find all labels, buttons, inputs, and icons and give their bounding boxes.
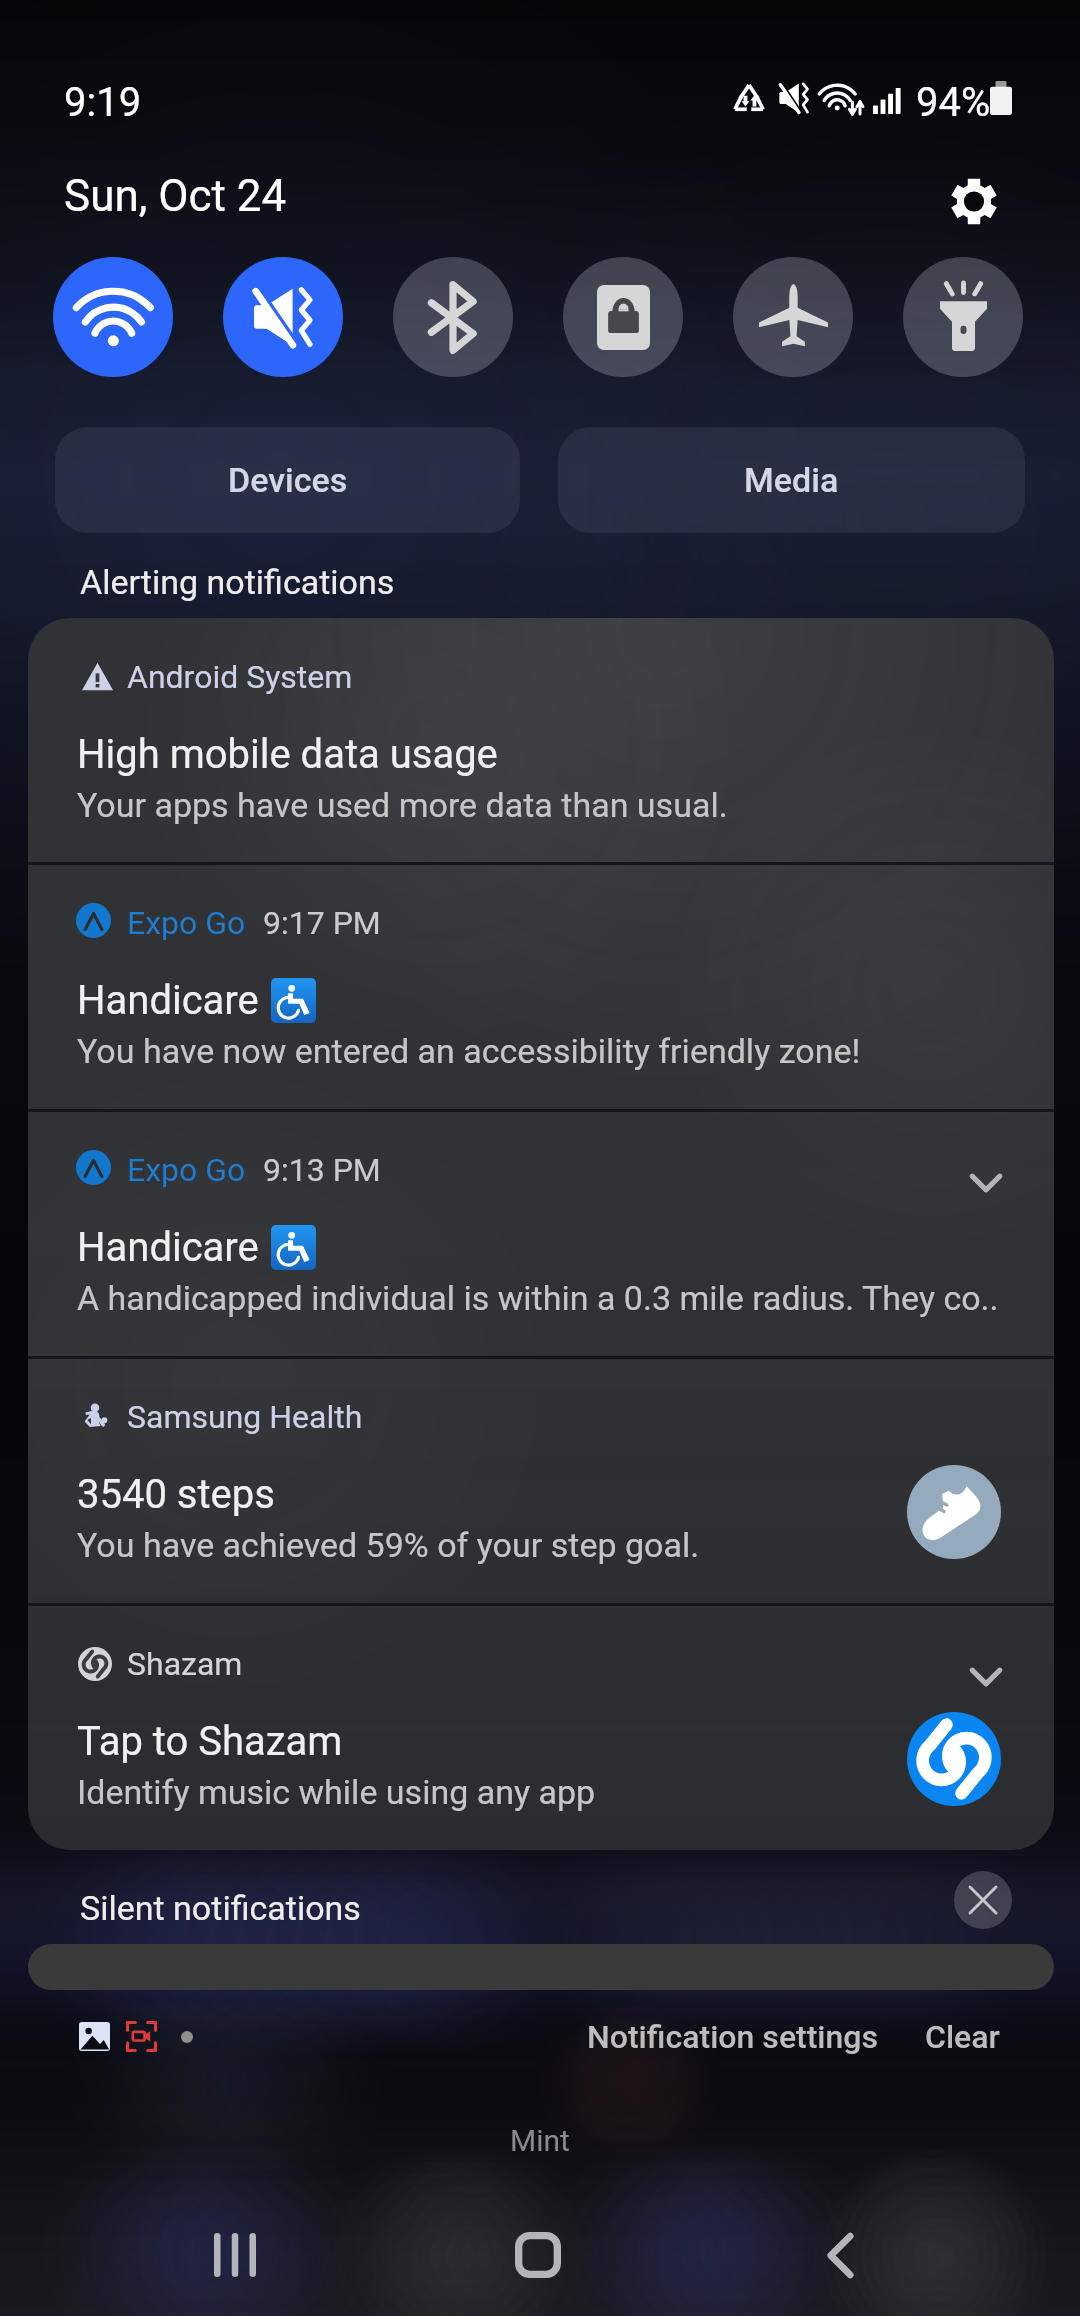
button[interactable] (28, 618, 1054, 864)
button[interactable]: Auto rotate (563, 257, 683, 377)
staticText: Silent notifications (80, 1888, 361, 1928)
staticText: Identify music while using any app (77, 1772, 596, 1812)
button[interactable]: Flashlight (903, 257, 1023, 377)
staticText: High mobile data usage (77, 731, 498, 778)
staticText: Sun, Oct 24 (64, 170, 287, 222)
button[interactable]: Wi-Fi (53, 257, 173, 377)
button[interactable]: Home (433, 2196, 643, 2314)
button[interactable]: Dismiss silent notifications (954, 1871, 1012, 1929)
button[interactable]: Screenshot (70, 2014, 118, 2058)
staticText: Expo Go (127, 1151, 246, 1189)
button[interactable] (28, 1605, 1054, 1851)
staticText: Devices (228, 460, 348, 500)
staticText: 9:13 PM (263, 1151, 381, 1189)
button[interactable]: Back (735, 2196, 945, 2314)
staticText: Shazam (127, 1645, 243, 1683)
button[interactable]: Devices (55, 427, 520, 533)
staticText: You have achieved 59% of your step goal. (77, 1525, 700, 1565)
button[interactable] (28, 1111, 1054, 1357)
staticText: Clear (925, 2018, 1000, 2056)
staticText: Handicare (77, 1224, 259, 1271)
staticText: 3540 steps (77, 1471, 275, 1518)
staticText: Expo Go (127, 904, 246, 942)
staticText: Your apps have used more data than usual… (77, 785, 728, 825)
staticText: Tap to Shazam (77, 1718, 343, 1765)
button[interactable]: Airplane mode (733, 257, 853, 377)
button[interactable]: Recent apps (130, 2196, 340, 2314)
staticText: Android System (127, 658, 353, 696)
staticText: 9:19 (64, 79, 142, 126)
staticText: 94% (916, 79, 991, 126)
button[interactable]: Bluetooth (393, 257, 513, 377)
staticText: Alerting notifications (80, 562, 395, 602)
staticText: A handicapped individual is within a 0.3… (77, 1278, 999, 1318)
button[interactable]: Silent notifications collapsed (28, 1944, 1054, 1990)
staticText: You have now entered an accessibility fr… (77, 1031, 861, 1071)
staticText: Samsung Health (127, 1398, 363, 1436)
staticText: Notification settings (587, 2018, 879, 2056)
button[interactable]: Mute (223, 257, 343, 377)
button[interactable]: Expand notification (950, 1147, 1022, 1219)
button[interactable]: Notification settings (585, 2012, 881, 2062)
button[interactable] (28, 864, 1054, 1110)
staticText: 9:17 PM (263, 904, 381, 942)
staticText: Handicare (77, 977, 259, 1024)
button[interactable]: Screen recorder (117, 2014, 165, 2058)
button[interactable] (28, 1358, 1054, 1604)
button[interactable]: Expand notification (950, 1641, 1022, 1713)
button[interactable]: Settings (930, 157, 1018, 245)
staticText: Mint (510, 2123, 570, 2158)
staticText: Media (744, 460, 839, 500)
button[interactable]: Media (558, 427, 1025, 533)
button[interactable]: Clear (920, 2012, 1005, 2062)
